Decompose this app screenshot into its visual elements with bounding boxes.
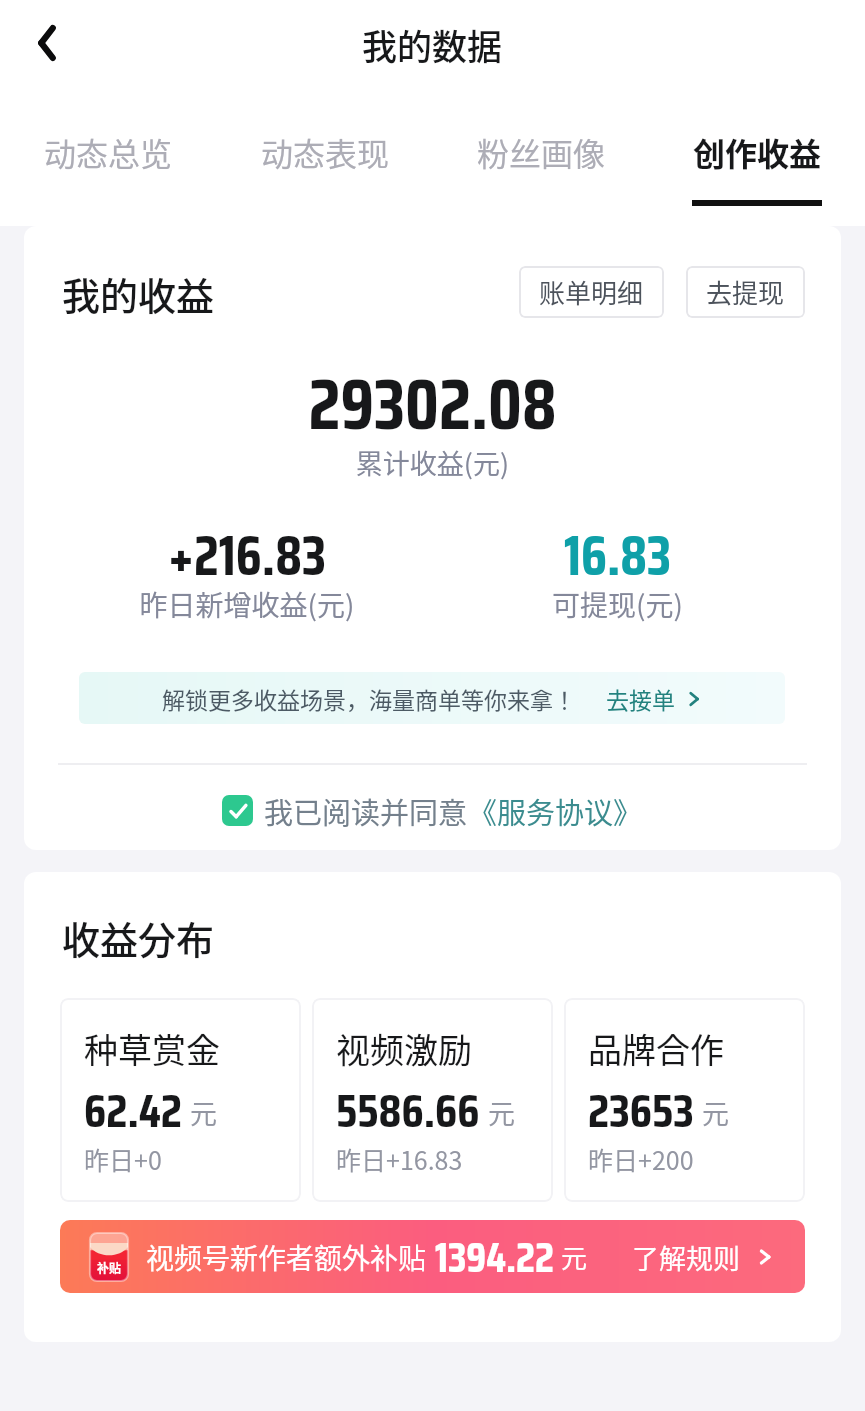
staticText: 粉丝画像 (477, 129, 606, 175)
staticText: 累计收益(元) (24, 443, 841, 482)
button[interactable]: 账单明细 (519, 266, 664, 318)
staticText: 元 (488, 1093, 515, 1132)
button[interactable]: 去提现 (686, 266, 805, 318)
button[interactable]: 创作收益 (649, 101, 865, 206)
staticText: 元 (702, 1093, 729, 1132)
staticText: 我已阅读并同意 (264, 790, 468, 830)
staticText: 可提现(元) (432, 584, 803, 625)
staticText: 昨日+0 (84, 1141, 162, 1177)
staticText: 视频激励 (336, 1024, 472, 1073)
staticText: 去提现 (706, 273, 785, 311)
staticText: 29302.08 (24, 348, 841, 460)
button[interactable]: Back (24, 20, 70, 66)
staticText: 补贴 (97, 1259, 122, 1276)
staticText: 昨日+16.83 (336, 1141, 463, 1177)
button[interactable]: 粉丝画像 (433, 101, 649, 200)
staticText: 1394.22 (435, 1224, 554, 1290)
staticText: 视频号新作者额外补贴 (146, 1237, 427, 1278)
staticText: 品牌合作 (588, 1024, 724, 1073)
staticText: 元 (190, 1093, 217, 1132)
staticText: 了解规则 (632, 1238, 740, 1277)
button[interactable]: 品牌合作 (564, 998, 805, 1202)
button[interactable]: 动态表现 (217, 101, 433, 200)
button[interactable]: 种草赏金 (60, 998, 301, 1202)
staticText: 解锁更多收益场景，海量商单等你来拿！ (162, 682, 576, 715)
staticText: 动态表现 (261, 129, 390, 175)
staticText: 62.42 (84, 1074, 182, 1148)
button[interactable]: 解锁更多收益场景，海量商单等你来拿！ (79, 672, 785, 724)
staticText: 创作收益 (693, 129, 822, 175)
staticText: 23653 (588, 1074, 694, 1148)
staticText: 去接单 (606, 682, 675, 715)
staticText: 元 (561, 1238, 588, 1276)
staticText: 种草赏金 (84, 1024, 220, 1073)
staticText: 16.83 (432, 513, 803, 600)
button[interactable]: 视频激励 (312, 998, 553, 1202)
staticText: 动态总览 (44, 129, 173, 175)
staticText: 账单明细 (539, 273, 644, 311)
staticText: 收益分布 (62, 910, 215, 965)
button[interactable]: 动态总览 (0, 101, 217, 200)
button[interactable]: 我已阅读并同意 (24, 790, 841, 830)
staticText: 《服务协议》 (468, 790, 643, 830)
staticText: 5586.66 (336, 1074, 480, 1148)
staticText: +216.83 (62, 513, 432, 600)
staticText: 昨日+200 (588, 1141, 694, 1177)
staticText: 我的数据 (362, 19, 503, 70)
button[interactable]: 补贴 (60, 1220, 805, 1293)
staticText: 我的收益 (62, 266, 215, 318)
staticText: 昨日新增收益(元) (62, 584, 432, 625)
